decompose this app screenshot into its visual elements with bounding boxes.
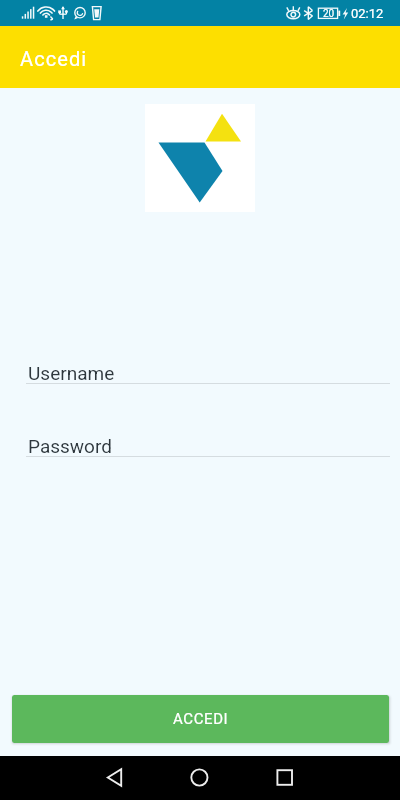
button[interactable]: Username [26, 362, 390, 384]
staticText: Accedi [20, 47, 88, 70]
button[interactable]: Back [94, 756, 138, 800]
staticText: ACCEDI [173, 710, 229, 728]
staticText: Username [28, 362, 115, 384]
button[interactable]: Password [26, 435, 390, 457]
button[interactable]: Home [177, 756, 221, 800]
button[interactable]: Recent apps [262, 756, 306, 800]
button[interactable]: ACCEDI [12, 695, 389, 743]
staticText: Password [28, 435, 112, 457]
staticText: 20 [323, 8, 335, 20]
staticText: 02:12 [351, 6, 384, 21]
